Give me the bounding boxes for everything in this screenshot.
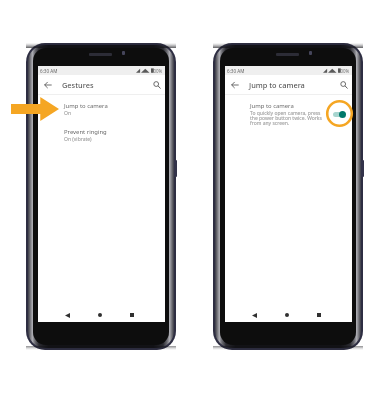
button[interactable]: Prevent ringing [38, 128, 165, 143]
staticText: 6:30 AM [227, 68, 245, 74]
staticText: To quickly open camera, press the power … [250, 110, 325, 126]
button[interactable]: Recent apps [311, 308, 327, 322]
button[interactable]: Back [59, 308, 75, 322]
button[interactable]: Home [92, 308, 108, 322]
staticText: Jump to camera [250, 102, 294, 110]
staticText: On (vibrate) [64, 136, 92, 143]
button[interactable]: Back [228, 78, 242, 92]
button[interactable]: Home [279, 308, 295, 322]
button[interactable]: Jump to camera toggle [326, 100, 353, 127]
staticText: Jump to camera [64, 102, 108, 110]
button[interactable]: Search [337, 78, 351, 92]
staticText: 100% [151, 68, 163, 74]
staticText: Jump to camera [249, 80, 305, 90]
staticText: 100% [338, 68, 350, 74]
button[interactable]: Jump to camera [38, 102, 165, 117]
staticText: On [64, 110, 71, 117]
button[interactable]: Back [41, 78, 55, 92]
button[interactable]: Search [150, 78, 164, 92]
button[interactable]: Back [246, 308, 262, 322]
staticText: 6:30 AM [40, 68, 58, 74]
staticText: Gestures [62, 80, 94, 90]
staticText: Prevent ringing [64, 128, 107, 136]
button[interactable]: Recent apps [124, 308, 140, 322]
